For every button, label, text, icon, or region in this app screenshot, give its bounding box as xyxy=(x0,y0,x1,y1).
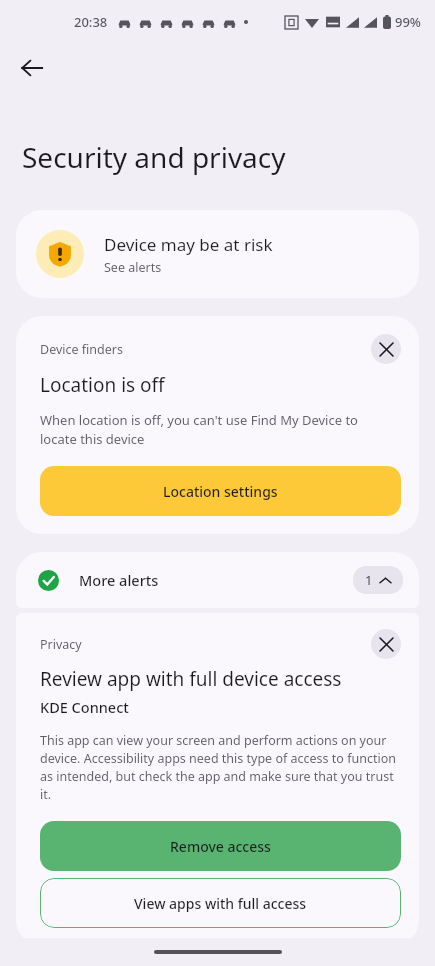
button[interactable]: Location settings xyxy=(40,466,401,516)
staticText: 99% xyxy=(395,13,421,31)
button[interactable]: View apps with full access xyxy=(40,878,401,928)
button[interactable]: More alerts xyxy=(16,552,419,608)
staticText: Location is off xyxy=(40,372,165,398)
staticText: Review app with full device access xyxy=(40,666,342,692)
button[interactable]: Remove access xyxy=(40,821,401,871)
staticText: Location settings xyxy=(163,482,278,501)
button[interactable]: Device may be at risk xyxy=(16,210,419,298)
staticText: Device finders xyxy=(40,341,123,358)
staticText: When location is off, you can't use Find… xyxy=(40,411,395,448)
staticText: 20:38 xyxy=(74,13,108,31)
staticText: 1 xyxy=(365,571,373,589)
button[interactable]: Dismiss xyxy=(371,334,401,364)
staticText: This app can view your screen and perfor… xyxy=(40,732,399,803)
button[interactable]: Back xyxy=(8,44,56,92)
staticText: View apps with full access xyxy=(134,894,307,913)
staticText: Remove access xyxy=(170,837,271,856)
staticText: Privacy xyxy=(40,636,82,653)
staticText: Device may be at risk xyxy=(104,233,273,256)
button[interactable]: Dismiss xyxy=(371,629,401,659)
staticText: KDE Connect xyxy=(40,697,129,717)
staticText: See alerts xyxy=(104,259,162,276)
staticText: Security and privacy xyxy=(22,138,286,176)
staticText: More alerts xyxy=(79,570,159,590)
